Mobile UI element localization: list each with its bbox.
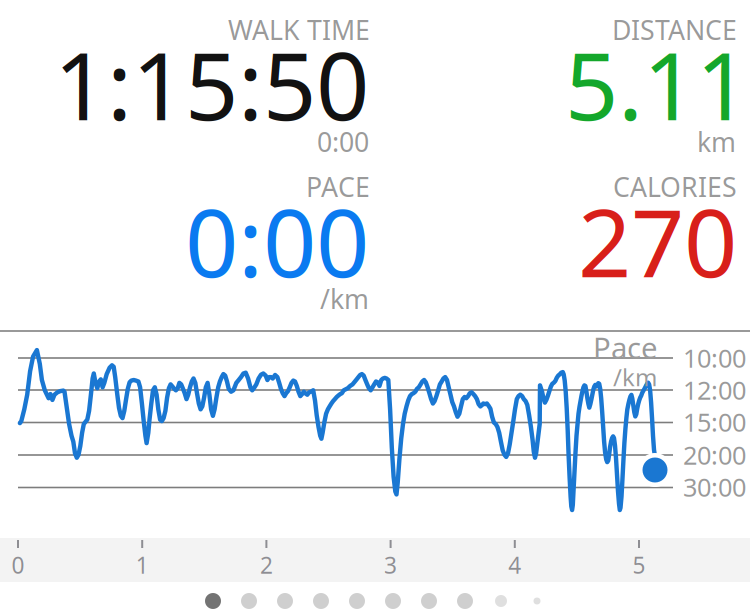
staticText: Pace (593, 328, 658, 367)
staticText: 4 (508, 550, 521, 580)
staticText: /km (320, 281, 369, 316)
staticText: WALK TIME (228, 12, 370, 47)
staticText: PACE (306, 169, 370, 204)
button[interactable]: Page 2 (231, 592, 267, 610)
button[interactable]: Page 10 (519, 592, 555, 610)
staticText: 0:00 (317, 124, 369, 159)
staticText: 1 (136, 550, 149, 580)
staticText: 2 (260, 550, 273, 580)
staticText: 10:00 (683, 341, 746, 375)
button[interactable]: Page 6 (375, 592, 411, 610)
button[interactable]: CALORIES (375, 157, 750, 314)
staticText: 5.11 (565, 22, 749, 146)
staticText: 12:00 (683, 373, 746, 407)
button[interactable]: Page 5 (339, 592, 375, 610)
button[interactable]: WALK TIME (0, 0, 375, 157)
staticText: CALORIES (613, 169, 737, 204)
button[interactable]: Page 4 (303, 592, 339, 610)
button[interactable]: DISTANCE (375, 0, 750, 157)
staticText: 0 (11, 550, 24, 580)
button[interactable]: Page 1, current page (195, 592, 231, 610)
staticText: 20:00 (683, 438, 746, 472)
button[interactable]: PACE (0, 157, 375, 314)
staticText: 1:15:50 (54, 22, 369, 146)
staticText: 30:00 (683, 470, 746, 504)
staticText: 5 (632, 550, 645, 580)
staticText: 3 (384, 550, 397, 580)
staticText: km (697, 124, 736, 159)
staticText: /km (613, 361, 657, 393)
staticText: DISTANCE (612, 12, 737, 47)
staticText: 270 (578, 179, 737, 303)
staticText: 15:00 (683, 405, 746, 439)
button[interactable]: Page 9 (483, 592, 519, 610)
button[interactable]: Page 7 (411, 592, 447, 610)
button[interactable]: Page 8 (447, 592, 483, 610)
button[interactable]: Page 3 (267, 592, 303, 610)
staticText: 0:00 (185, 179, 369, 303)
